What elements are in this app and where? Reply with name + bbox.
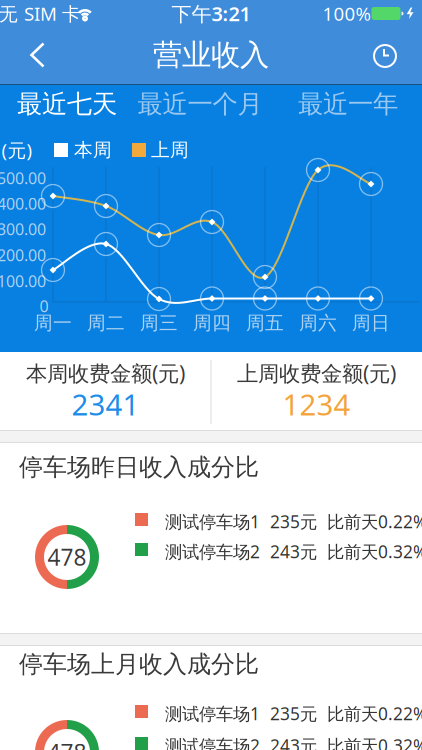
staticText: 300.00 bbox=[0, 218, 46, 240]
button[interactable]: 最近一年 bbox=[278, 85, 418, 123]
button[interactable]: History bbox=[373, 44, 397, 68]
staticText: 停车场上月收入成分比 bbox=[19, 649, 259, 679]
staticText: 测试停车场1 235元 比前天0.22% bbox=[165, 510, 422, 533]
staticText: 200.00 bbox=[0, 244, 46, 266]
staticText: 500.00 bbox=[0, 167, 46, 189]
staticText: 100.00 bbox=[0, 270, 46, 292]
staticText: 上周 bbox=[151, 138, 189, 161]
staticText: 下午3:21 bbox=[171, 0, 250, 27]
button[interactable]: 最近七天 bbox=[0, 85, 137, 123]
staticText: 478 bbox=[47, 737, 86, 750]
button[interactable]: Back bbox=[30, 42, 46, 67]
staticText: (元) bbox=[1, 138, 32, 162]
staticText: 周二 bbox=[87, 311, 125, 334]
staticText: 停车场昨日收入成分比 bbox=[19, 452, 259, 482]
staticText: 478 bbox=[47, 542, 86, 572]
staticText: 1234 bbox=[282, 384, 350, 423]
staticText: 100% bbox=[322, 1, 371, 26]
staticText: 最近七天 bbox=[17, 88, 117, 119]
staticText: 周四 bbox=[193, 311, 231, 334]
staticText: 400.00 bbox=[0, 193, 46, 214]
staticText: 无 SIM 卡 bbox=[0, 1, 81, 26]
button[interactable]: 最近一个月 bbox=[130, 85, 270, 123]
staticText: 测试停车场1 235元 比前天0.22% bbox=[165, 702, 422, 725]
staticText: 最近一个月 bbox=[137, 88, 262, 119]
staticText: 测试停车场2 243元 比前天0.32% bbox=[165, 540, 422, 563]
staticText: 周日 bbox=[352, 311, 390, 334]
staticText: 本周 bbox=[74, 138, 112, 161]
staticText: 2341 bbox=[71, 384, 139, 423]
staticText: 周三 bbox=[140, 311, 178, 334]
staticText: 周六 bbox=[299, 311, 337, 334]
staticText: 周一 bbox=[34, 311, 72, 334]
staticText: 营业收入 bbox=[153, 37, 269, 73]
staticText: 最近一年 bbox=[298, 88, 398, 119]
staticText: 测试停车场2 243元 比前天0.32% bbox=[165, 734, 422, 750]
staticText: 0 bbox=[39, 295, 48, 317]
staticText: 本周收费金额(元) bbox=[26, 359, 185, 387]
staticText: 上周收费金额(元) bbox=[237, 359, 396, 387]
staticText: 周五 bbox=[246, 311, 284, 334]
